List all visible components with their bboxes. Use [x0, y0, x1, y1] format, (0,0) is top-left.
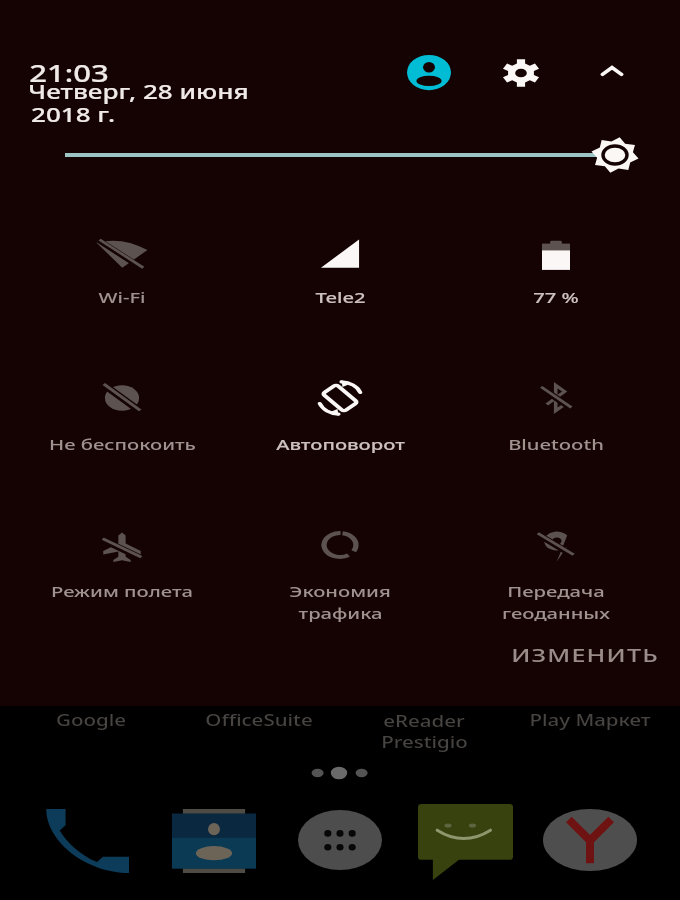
- staticText: 2018 г.: [31, 101, 115, 128]
- staticText: Экономия: [289, 580, 391, 601]
- button[interactable]: Home screen pages: [300, 760, 380, 788]
- button[interactable]: ИЗМЕНИТЬ: [490, 636, 680, 682]
- button[interactable]: User profile: [407, 49, 451, 96]
- staticText: Wi-Fi: [98, 286, 146, 307]
- staticText: Режим полета: [51, 580, 193, 601]
- button[interactable]: 21:03: [10, 50, 310, 142]
- button[interactable]: eReader: [339, 706, 509, 786]
- staticText: OfficeSuite: [205, 709, 313, 730]
- staticText: Tele2: [315, 286, 366, 307]
- staticText: 77 %: [533, 286, 579, 307]
- button[interactable]: Wi-Fi: [22, 208, 222, 315]
- staticText: Автоповорот: [276, 433, 405, 454]
- button[interactable]: OfficeSuite: [174, 706, 344, 764]
- staticText: 21:03: [29, 57, 109, 89]
- staticText: eReader: [383, 710, 465, 731]
- button[interactable]: Play Маркет: [505, 706, 675, 764]
- button[interactable]: 77 %: [456, 208, 656, 315]
- staticText: Не беспокоить: [49, 433, 196, 454]
- staticText: Четверг, 28 июня: [28, 78, 249, 105]
- button[interactable]: Автоповорот: [240, 354, 440, 462]
- staticText: Передача: [507, 580, 605, 601]
- staticText: ИЗМЕНИТЬ: [511, 641, 659, 667]
- button[interactable]: Передача: [456, 501, 656, 631]
- button[interactable]: Режим полета: [22, 501, 222, 609]
- button[interactable]: Yandex Browser: [543, 809, 637, 871]
- button[interactable]: Экономия: [240, 501, 440, 631]
- button[interactable]: Brightness: [56, 133, 646, 177]
- button[interactable]: Phone: [45, 809, 129, 873]
- button[interactable]: Settings: [499, 51, 543, 95]
- button[interactable]: Не беспокоить: [22, 354, 222, 462]
- button[interactable]: Tele2: [240, 208, 440, 315]
- staticText: Prestigio: [381, 731, 468, 752]
- staticText: Google: [56, 709, 126, 730]
- button[interactable]: All apps: [298, 810, 382, 870]
- button[interactable]: Contacts: [172, 809, 256, 873]
- staticText: геоданных: [502, 602, 610, 623]
- staticText: трафика: [298, 602, 383, 623]
- staticText: Play Маркет: [529, 709, 651, 730]
- button[interactable]: Google: [6, 706, 176, 764]
- button[interactable]: Bluetooth: [456, 354, 656, 462]
- staticText: Bluetooth: [508, 433, 604, 454]
- button[interactable]: Collapse: [590, 49, 634, 93]
- button[interactable]: Messaging: [418, 804, 514, 880]
